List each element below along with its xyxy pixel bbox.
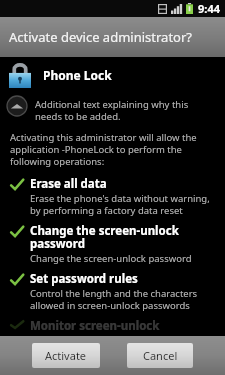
- button[interactable]: Change the screen-unlock password: [0, 223, 225, 271]
- staticText: Phone Lock: [43, 67, 112, 83]
- button[interactable]: Monitor screen-unlock: [0, 318, 225, 336]
- other: Collapse details: [6, 95, 28, 117]
- staticText: Control the length and the characters al…: [30, 287, 211, 312]
- button[interactable]: Activate: [32, 343, 100, 368]
- staticText: Activating this administrator will allow…: [10, 131, 199, 168]
- staticText: Monitor screen-unlock: [30, 318, 160, 330]
- button[interactable]: Collapse details: [0, 93, 225, 127]
- staticText: Cancel: [143, 348, 178, 363]
- staticText: Erase the phone's data without warning, …: [30, 192, 211, 217]
- staticText: Set password rules: [30, 271, 138, 287]
- button[interactable]: Erase all data: [0, 176, 225, 223]
- staticText: Change the screen-unlock password: [30, 252, 192, 265]
- button[interactable]: Cancel: [127, 343, 193, 368]
- button[interactable]: Set password rules: [0, 271, 225, 318]
- staticText: Change the screen-unlock password: [30, 223, 211, 252]
- staticText: Additional text explaining why this need…: [35, 98, 207, 123]
- staticText: 9:44: [198, 1, 220, 16]
- staticText: Erase all data: [30, 176, 107, 192]
- staticText: Activate device administrator?: [9, 28, 192, 46]
- button[interactable]: Phone Lock: [0, 57, 225, 93]
- staticText: Activate: [45, 348, 87, 363]
